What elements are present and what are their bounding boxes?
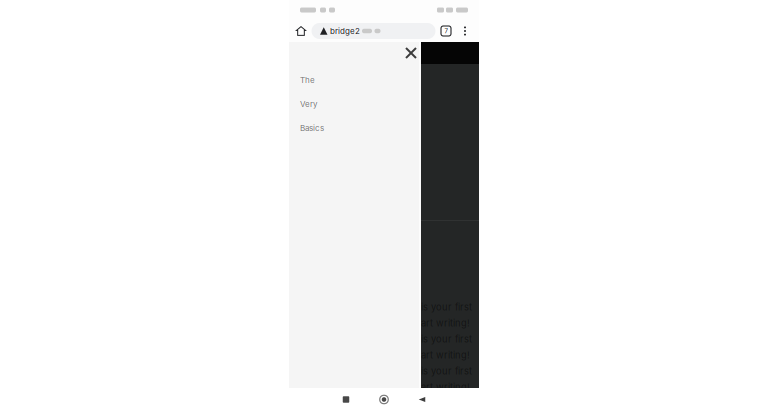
button[interactable]: Tabs: [438, 20, 454, 42]
staticText: The: [300, 75, 315, 85]
staticText: bridge2: [330, 26, 360, 36]
button[interactable]: More options: [459, 20, 471, 42]
staticText: Very: [300, 99, 317, 109]
button[interactable]: Home: [365, 388, 403, 411]
staticText: is your first: [421, 365, 472, 377]
staticText: 7: [444, 27, 447, 35]
button[interactable]: Home: [292, 20, 309, 42]
staticText: is your first: [421, 333, 472, 345]
button[interactable]: Close: [403, 45, 419, 61]
button[interactable]: Back: [403, 388, 441, 411]
staticText: art writing!: [421, 381, 470, 393]
staticText: art writing!: [421, 317, 470, 329]
staticText: art writing!: [421, 349, 470, 361]
staticText: is your first: [421, 301, 472, 313]
button[interactable]: Recent apps: [327, 388, 365, 411]
button[interactable]: bridge2: [311, 23, 435, 39]
staticText: Basics: [300, 123, 324, 133]
